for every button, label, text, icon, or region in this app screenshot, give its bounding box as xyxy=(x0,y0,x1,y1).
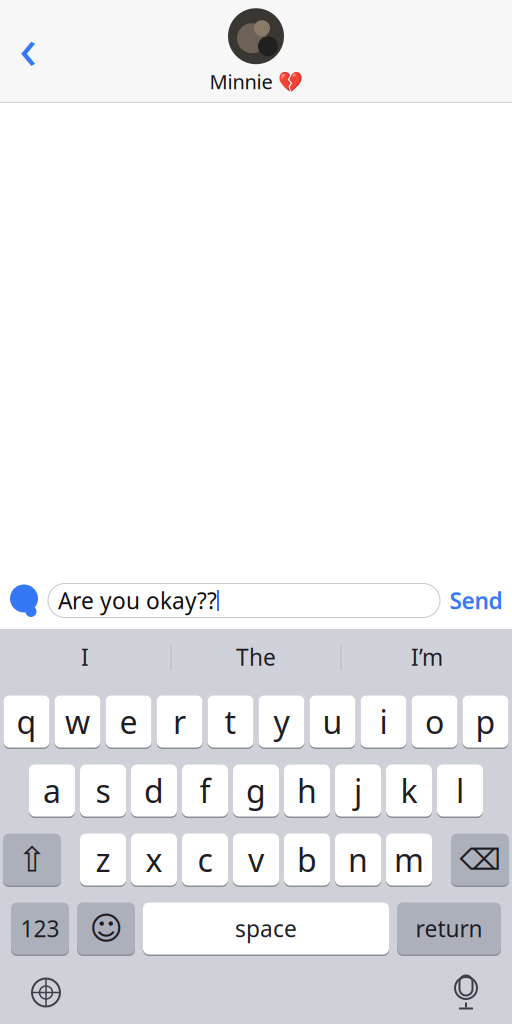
button[interactable]: I xyxy=(0,629,170,685)
button[interactable]: e xyxy=(105,694,151,748)
staticText: I’m xyxy=(411,642,443,672)
button[interactable]: Next keyboard xyxy=(0,963,92,1021)
staticText: b xyxy=(297,838,317,881)
staticText: c xyxy=(197,838,212,881)
staticText: o xyxy=(425,700,444,743)
staticText: s xyxy=(95,769,110,812)
button[interactable]: h xyxy=(284,763,330,817)
staticText: space xyxy=(235,913,297,943)
staticText: ⌫ xyxy=(459,843,500,876)
button[interactable]: i xyxy=(360,694,406,748)
button[interactable]: d xyxy=(131,763,177,817)
button[interactable]: o xyxy=(411,694,457,748)
button[interactable]: z xyxy=(80,832,126,886)
button[interactable]: The xyxy=(171,629,340,685)
button[interactable]: b xyxy=(284,832,330,886)
button[interactable]: Message text field xyxy=(48,583,440,617)
button[interactable]: Minnie, contact details xyxy=(156,8,356,95)
staticText: u xyxy=(322,700,342,743)
staticText: p xyxy=(475,700,495,743)
button[interactable]: f xyxy=(182,763,228,817)
button[interactable]: k xyxy=(386,763,432,817)
button[interactable]: 123 xyxy=(11,901,69,955)
button[interactable]: t xyxy=(207,694,253,748)
staticText: ☺ xyxy=(89,910,122,947)
staticText: ‹ xyxy=(19,7,37,85)
staticText: 123 xyxy=(20,913,59,943)
staticText: d xyxy=(144,769,164,812)
staticText: z xyxy=(95,838,110,881)
staticText: Are you okay?? xyxy=(58,585,217,615)
staticText: ⇧ xyxy=(17,840,46,879)
button[interactable]: j xyxy=(335,763,381,817)
button[interactable]: w xyxy=(54,694,100,748)
staticText: e xyxy=(119,700,137,743)
button[interactable]: Send xyxy=(440,572,512,628)
staticText: f xyxy=(199,769,210,812)
button[interactable]: y xyxy=(258,694,304,748)
staticText: i xyxy=(379,700,387,743)
staticText: y xyxy=(273,700,289,743)
button[interactable]: c xyxy=(182,832,228,886)
staticText: q xyxy=(16,700,36,743)
button[interactable]: a xyxy=(29,763,75,817)
button[interactable]: return xyxy=(397,901,501,955)
button[interactable]: m xyxy=(386,832,432,886)
staticText: g xyxy=(246,769,266,812)
staticText: v xyxy=(248,838,264,881)
staticText: I xyxy=(81,642,89,672)
staticText: t xyxy=(224,700,236,743)
staticText: x xyxy=(145,838,162,881)
button[interactable]: Emoji xyxy=(77,901,135,955)
button[interactable]: space xyxy=(143,901,389,955)
staticText: m xyxy=(394,838,424,881)
staticText: a xyxy=(43,769,61,812)
staticText: j xyxy=(354,769,362,812)
button[interactable]: Apps xyxy=(0,572,48,628)
button[interactable]: n xyxy=(335,832,381,886)
staticText: Minnie 💔 xyxy=(209,68,302,95)
staticText: w xyxy=(65,700,90,743)
button[interactable]: l xyxy=(437,763,483,817)
button[interactable]: p xyxy=(462,694,508,748)
button[interactable]: g xyxy=(233,763,279,817)
button[interactable]: I’m xyxy=(341,629,512,685)
staticText: h xyxy=(297,769,317,812)
button[interactable]: s xyxy=(80,763,126,817)
button[interactable]: u xyxy=(309,694,355,748)
button[interactable]: Shift xyxy=(3,832,61,886)
button[interactable]: Delete xyxy=(451,832,509,886)
button[interactable]: Back xyxy=(0,21,56,81)
staticText: r xyxy=(173,700,186,743)
button[interactable]: q xyxy=(3,694,49,748)
staticText: l xyxy=(456,769,464,812)
button[interactable]: Dictation xyxy=(420,963,512,1021)
staticText: return xyxy=(415,913,482,943)
staticText: k xyxy=(400,769,417,812)
staticText: The xyxy=(236,642,276,672)
button[interactable]: v xyxy=(233,832,279,886)
button[interactable]: x xyxy=(131,832,177,886)
button[interactable]: r xyxy=(156,694,202,748)
staticText: n xyxy=(348,838,368,881)
staticText: Send xyxy=(449,585,502,615)
